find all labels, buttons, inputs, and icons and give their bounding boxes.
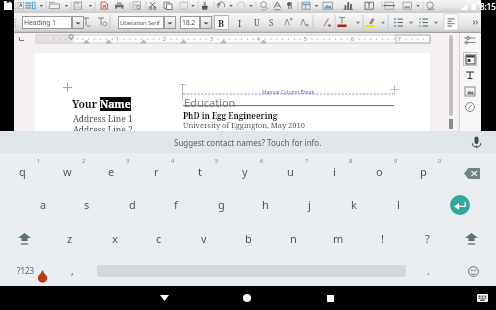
button[interactable]: Backspace — [458, 163, 486, 183]
staticText: S — [269, 17, 274, 28]
staticText: 5 — [215, 157, 219, 164]
staticText: Address Line 1 — [73, 113, 133, 125]
staticText: b — [245, 231, 252, 246]
staticText: l — [397, 197, 400, 212]
button[interactable]: Suggest contact names? Touch for info. — [0, 131, 496, 153]
button[interactable]: U — [251, 15, 263, 30]
button[interactable]: o — [357, 158, 401, 184]
button[interactable]: g — [199, 191, 243, 217]
staticText: 3 — [126, 157, 130, 164]
staticText: c — [156, 231, 162, 246]
staticText: s — [84, 197, 90, 212]
staticText: x — [112, 231, 118, 246]
staticText: m — [333, 231, 344, 246]
button[interactable]: . — [406, 258, 450, 284]
staticText: Suggest contact names? Touch for info. — [174, 137, 322, 148]
button[interactable]: Enter — [450, 195, 470, 215]
staticText: 4 — [171, 157, 175, 164]
button[interactable]: q — [0, 158, 44, 184]
staticText: ! — [381, 231, 384, 246]
button[interactable]: s — [65, 191, 109, 217]
staticText: j — [308, 197, 311, 212]
staticText: Your — [72, 97, 100, 111]
button[interactable]: v — [182, 225, 226, 251]
staticText: 7 — [305, 157, 309, 164]
button[interactable]: Voice input — [468, 134, 485, 151]
staticText: 4 — [257, 36, 260, 43]
staticText: a — [40, 197, 47, 212]
button[interactable]: Recent apps — [314, 286, 346, 310]
button[interactable]: Shift — [455, 227, 487, 251]
button[interactable]: Emoji — [461, 259, 485, 283]
button[interactable]: 18.2 — [180, 16, 212, 29]
staticText: ? — [425, 231, 430, 246]
staticText: Name — [100, 97, 131, 111]
button[interactable] — [14, 0, 481, 13]
staticText: y — [242, 164, 248, 179]
button[interactable]: Properties — [463, 52, 477, 66]
button[interactable]: m — [316, 225, 360, 251]
button[interactable]: l — [376, 191, 420, 217]
button[interactable]: e — [89, 158, 133, 184]
staticText: n — [290, 231, 297, 246]
staticText: 6 — [260, 157, 264, 164]
button[interactable]: Shift — [8, 227, 40, 251]
staticText: k — [351, 197, 357, 212]
button[interactable]: c — [137, 225, 181, 251]
staticText: 2 — [163, 36, 166, 43]
button[interactable]: ?123 — [8, 259, 44, 281]
staticText: t — [198, 164, 202, 179]
staticText: r — [154, 164, 159, 179]
button[interactable]: t — [178, 158, 222, 184]
staticText: Education — [184, 95, 236, 110]
button[interactable]: ? — [405, 225, 449, 251]
button[interactable]: d — [110, 191, 154, 217]
button[interactable]: w — [45, 158, 89, 184]
staticText: PhD in Egg Engineering — [183, 110, 278, 121]
button[interactable]: i — [312, 158, 356, 184]
button[interactable]: ! — [360, 225, 404, 251]
button[interactable]: Heading 1 — [22, 16, 84, 29]
button[interactable]: h — [243, 191, 287, 217]
staticText: University of Eggington, May 2010 — [183, 120, 305, 130]
button[interactable]: y — [223, 158, 267, 184]
button[interactable]: n — [271, 225, 315, 251]
button[interactable]: k — [332, 191, 376, 217]
staticText: d — [129, 197, 136, 212]
button[interactable]: j — [287, 191, 331, 217]
button[interactable]: z — [48, 225, 92, 251]
staticText: u — [287, 164, 294, 179]
staticText: v — [201, 231, 207, 246]
button[interactable]: , — [50, 258, 94, 284]
staticText: . — [427, 264, 430, 278]
button[interactable]: u — [268, 158, 312, 184]
button[interactable]: Hide keyboard — [468, 286, 496, 310]
button[interactable]: f — [154, 191, 198, 217]
button[interactable]: a — [21, 191, 65, 217]
staticText: p — [420, 164, 427, 179]
button[interactable]: Back — [148, 286, 180, 310]
staticText: Address Line 2 — [73, 124, 133, 136]
button[interactable]: b — [226, 225, 270, 251]
button[interactable]: Home — [231, 286, 263, 310]
staticText: w — [63, 164, 72, 179]
staticText: e — [108, 164, 115, 179]
button[interactable]: r — [134, 158, 178, 184]
button[interactable]: I — [234, 15, 246, 30]
staticText: q — [19, 164, 26, 179]
staticText: B — [218, 17, 225, 29]
staticText: 9 — [394, 157, 398, 164]
button[interactable]: S — [265, 15, 277, 30]
staticText: 7 — [398, 36, 401, 43]
button[interactable]: p — [401, 158, 445, 184]
button[interactable]: B — [214, 15, 229, 30]
button[interactable]: Liberation Serif — [118, 16, 176, 29]
staticText: ?123 — [17, 265, 35, 276]
staticText: U — [254, 17, 260, 28]
button[interactable]: x — [93, 225, 137, 251]
staticText: 1 — [116, 36, 119, 43]
staticText: Heading 1 — [24, 18, 56, 28]
staticText: Liberation Serif — [120, 19, 160, 27]
staticText: h — [262, 197, 269, 212]
